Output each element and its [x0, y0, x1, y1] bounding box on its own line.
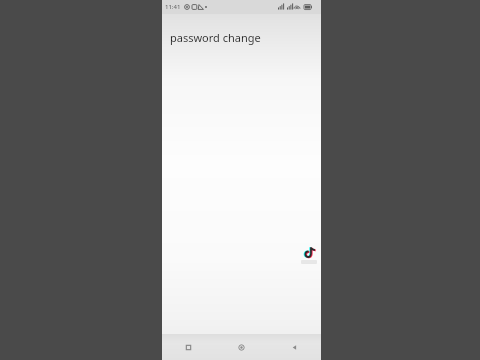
staticText: password change	[170, 30, 261, 45]
button[interactable]: Back	[268, 334, 321, 360]
staticText: 11:41	[165, 3, 181, 11]
button[interactable]: Home	[215, 334, 268, 360]
button[interactable]: Recent apps	[162, 334, 215, 360]
